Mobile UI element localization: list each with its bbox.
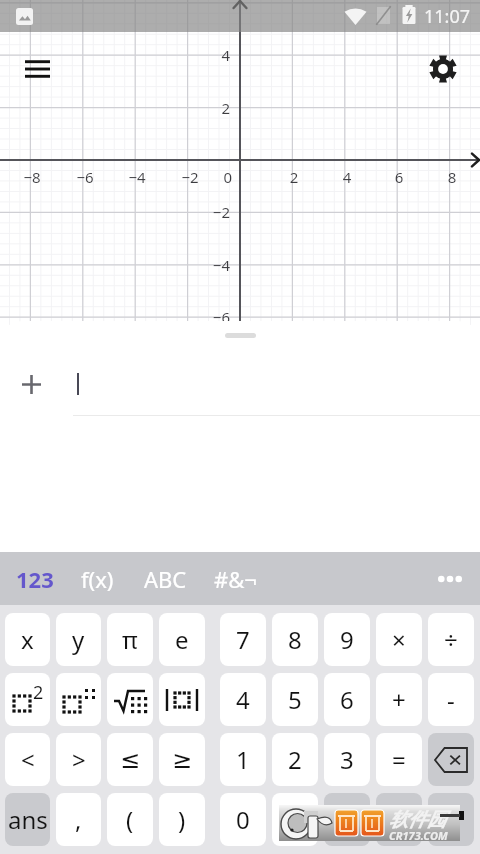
button[interactable]: ≥ [159,733,205,786]
staticText: 2 [274,167,314,187]
button[interactable] [159,673,205,726]
staticText: 4 [200,45,230,65]
staticText: 6 [340,683,354,716]
button[interactable]: 5 [272,673,318,726]
staticText: , [75,803,82,836]
staticText: −6 [65,167,105,187]
staticText: −2 [200,202,230,222]
staticText: 0 [236,803,250,836]
staticText: ≥ [172,746,193,774]
staticText: 2 [288,743,302,776]
button[interactable]: 3 [324,733,370,786]
button[interactable] [107,673,153,726]
staticText: 2 [200,98,230,118]
staticText: 7 [236,623,250,656]
button[interactable] [56,673,101,726]
staticText: . [292,803,299,836]
button[interactable]: ) [159,793,205,846]
button[interactable]: Settings [423,49,463,89]
button[interactable] [428,733,474,786]
staticText: ans [8,803,48,836]
staticText: = [392,743,406,776]
button[interactable]: - [428,673,474,726]
button[interactable]: 2 [272,733,318,786]
staticText: 9 [340,623,354,656]
staticText: ( [126,803,134,836]
button[interactable]: ( [107,793,153,846]
button[interactable]: 0 [220,793,266,846]
staticText: 4 [327,167,367,187]
staticText: 1 [236,743,250,776]
staticText: - [447,683,455,716]
button[interactable]: f(x) [75,552,120,605]
button[interactable]: Menu [15,49,59,93]
staticText: 5 [288,683,302,716]
button[interactable]: 9 [324,613,370,666]
staticText: 8 [288,623,302,656]
staticText: −4 [117,167,157,187]
button[interactable]: x [5,613,50,666]
button[interactable]: 1 [220,733,266,786]
button[interactable]: < [5,733,50,786]
button[interactable]: More options [426,552,474,605]
button[interactable]: 2 [5,673,50,726]
staticText: 4 [236,683,250,716]
staticText: 3 [340,743,354,776]
button[interactable] [0,354,480,416]
staticText: −8 [12,167,52,187]
staticText: × [392,623,406,656]
staticText: ÷ [444,623,458,656]
button[interactable]: π [107,613,153,666]
staticText: ABC [144,564,187,594]
button[interactable]: 4 [220,673,266,726]
staticText: ) [178,803,186,836]
button[interactable] [324,793,370,846]
staticText: + [392,683,406,716]
staticText: π [122,623,138,656]
button[interactable]: + [376,673,422,726]
staticText: ≤ [120,746,141,774]
button[interactable]: #&¬ [208,552,263,605]
staticText: 123 [16,564,54,594]
staticText: > [72,743,86,776]
button[interactable]: y [56,613,101,666]
button[interactable]: 7 [220,613,266,666]
staticText: −4 [200,255,230,275]
button[interactable]: . [272,793,318,846]
staticText: 8 [432,167,472,187]
button[interactable]: ans [5,793,50,846]
button[interactable]: 8 [272,613,318,666]
button[interactable]: ≤ [107,733,153,786]
button[interactable]: 6 [324,673,370,726]
staticText: #&¬ [214,564,257,594]
button[interactable]: ÷ [428,613,474,666]
staticText: CR173.COM [389,828,448,843]
staticText: 6 [379,167,419,187]
button[interactable]: ABC [138,552,193,605]
staticText: y [72,623,85,656]
button[interactable] [428,793,474,846]
button[interactable]: 123 [10,552,60,605]
staticText: 11:07 [424,4,471,29]
button[interactable]: = [376,733,422,786]
staticText: 0 [202,167,232,187]
staticText: < [21,743,35,776]
staticText: −2 [170,167,210,187]
button[interactable] [376,793,422,846]
staticText: e [175,623,189,656]
button[interactable]: , [56,793,101,846]
staticText: 2 [33,680,44,705]
button[interactable]: > [56,733,101,786]
staticText: f(x) [81,564,114,594]
staticText: 软件园 [389,808,446,832]
staticText: −6 [200,307,230,327]
button[interactable]: × [376,613,422,666]
staticText: x [21,623,34,656]
button[interactable]: e [159,613,205,666]
